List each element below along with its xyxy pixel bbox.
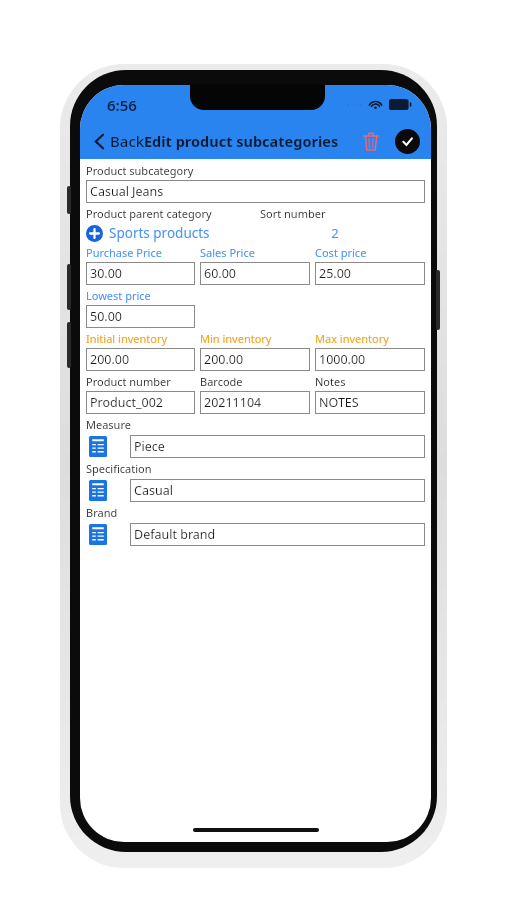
button[interactable]: 1000.00: [315, 348, 425, 371]
staticText: Piece: [134, 438, 165, 455]
staticText: 20211104: [204, 394, 262, 411]
button[interactable]: 25.00: [315, 262, 425, 285]
button[interactable]: 200.00: [200, 348, 310, 371]
staticText: Product subcategory: [86, 163, 194, 178]
button[interactable]: Pick Specification: [86, 477, 109, 503]
button[interactable]: 60.00: [200, 262, 310, 285]
staticText: Casual Jeans: [90, 183, 164, 200]
button[interactable]: Default brand: [130, 523, 425, 546]
staticText: NOTES: [319, 394, 359, 411]
staticText: Initial inventory: [86, 331, 195, 346]
staticText: Sort number: [260, 206, 425, 221]
staticText: Default brand: [134, 526, 216, 543]
staticText: 60.00: [204, 265, 236, 282]
staticText: Brand: [86, 505, 118, 520]
button[interactable]: Casual: [130, 479, 425, 502]
button[interactable]: 20211104: [200, 391, 310, 414]
staticText: Min inventory: [200, 331, 310, 346]
staticText: 30.00: [90, 265, 122, 282]
button[interactable]: Sports products: [86, 224, 260, 242]
button[interactable]: Back: [88, 127, 151, 155]
staticText: Specification: [86, 461, 152, 476]
staticText: 200.00: [204, 351, 244, 368]
staticText: Cost price: [315, 245, 425, 260]
staticText: Sports products: [109, 224, 210, 242]
button[interactable]: Delete: [357, 127, 385, 155]
staticText: Lowest price: [86, 288, 151, 303]
button[interactable]: Pick Measure: [86, 433, 109, 459]
staticText: 2: [331, 224, 339, 242]
staticText: Product number: [86, 374, 195, 389]
staticText: Back: [110, 131, 145, 151]
staticText: Edit product subcategories: [144, 131, 339, 151]
staticText: 25.00: [319, 265, 351, 282]
button[interactable]: 50.00: [86, 305, 195, 328]
staticText: Sales Price: [200, 245, 310, 260]
staticText: Purchase Price: [86, 245, 195, 260]
button[interactable]: 200.00: [86, 348, 195, 371]
staticText: 1000.00: [319, 351, 366, 368]
staticText: Notes: [315, 374, 425, 389]
staticText: Casual: [134, 482, 173, 499]
button[interactable]: Pick Brand: [86, 521, 109, 547]
button[interactable]: Piece: [130, 435, 425, 458]
staticText: 6:56: [107, 95, 137, 115]
staticText: Measure: [86, 417, 131, 432]
button[interactable]: Casual Jeans: [86, 180, 425, 203]
staticText: 50.00: [90, 308, 122, 325]
button[interactable]: NOTES: [315, 391, 425, 414]
button[interactable]: Save: [395, 129, 420, 154]
button[interactable]: Product_002: [86, 391, 195, 414]
staticText: 200.00: [90, 351, 130, 368]
staticText: Product_002: [90, 394, 163, 411]
button[interactable]: 30.00: [86, 262, 195, 285]
staticText: Max inventory: [315, 331, 425, 346]
staticText: Product parent category: [86, 206, 260, 221]
staticText: Barcode: [200, 374, 310, 389]
